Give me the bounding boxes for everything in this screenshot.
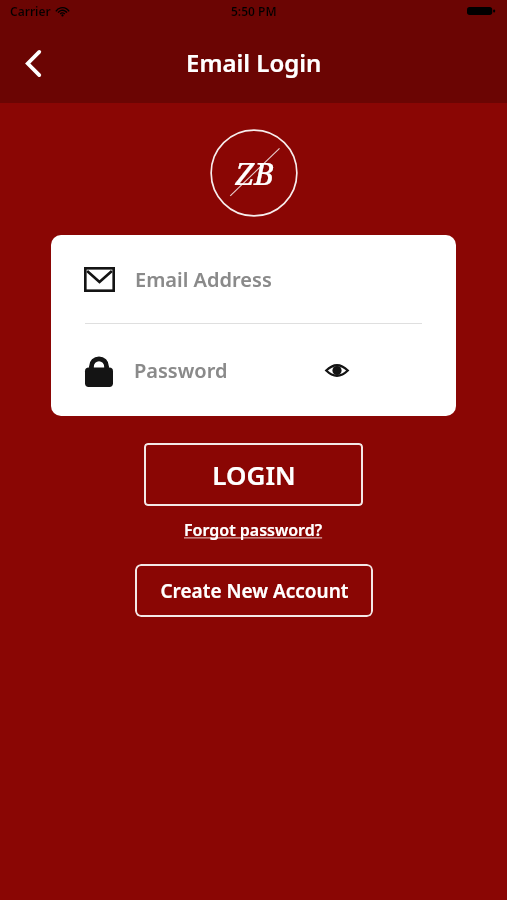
- staticText: Forgot password?: [184, 519, 323, 541]
- button[interactable]: LOGIN: [144, 443, 363, 506]
- button[interactable]: Create New Account: [135, 564, 373, 617]
- button[interactable]: Password: [51, 324, 456, 416]
- staticText: ZB: [235, 153, 274, 194]
- staticText: Carrier: [10, 3, 51, 19]
- staticText: Email Address: [135, 266, 272, 293]
- button[interactable]: Forgot password?: [174, 515, 333, 545]
- staticText: Email Login: [186, 46, 322, 79]
- staticText: 5:50 PM: [231, 3, 277, 19]
- staticText: LOGIN: [212, 457, 296, 492]
- button[interactable]: Show password: [320, 353, 354, 387]
- button[interactable]: Back: [10, 40, 56, 86]
- staticText: Create New Account: [160, 578, 349, 604]
- button[interactable]: Email Address: [51, 235, 456, 323]
- staticText: Password: [134, 357, 228, 384]
